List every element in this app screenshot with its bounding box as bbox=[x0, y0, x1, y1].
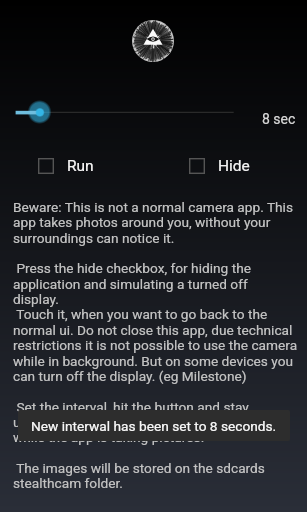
other: Stealth cam logo bbox=[132, 20, 174, 62]
staticText: Set the interval, hit the button and sta… bbox=[13, 399, 249, 415]
staticText: can turn off the display. (eg Milestone) bbox=[13, 368, 247, 384]
staticText: surroundings can notice it. bbox=[13, 230, 175, 246]
button[interactable]: Interval slider bbox=[0, 94, 245, 130]
staticText: while the app is taking pictures. bbox=[13, 429, 205, 445]
staticText: normal ui. Do not close this app, due te… bbox=[13, 322, 293, 338]
staticText: application and simulating a turned off bbox=[13, 276, 248, 292]
staticText: stealthcam folder. bbox=[13, 475, 123, 491]
staticText: display. bbox=[13, 291, 59, 307]
staticText: Hide bbox=[218, 157, 250, 175]
staticText: Run bbox=[67, 157, 94, 175]
staticText: while in background. But on some devices… bbox=[13, 353, 294, 369]
staticText: The images will be stored on the sdcards bbox=[13, 460, 265, 476]
button[interactable]: Run bbox=[34, 153, 100, 179]
staticText: Press the hide checkbox, for hiding the bbox=[13, 260, 251, 276]
staticText: Beware: This is not a normal camera app.… bbox=[13, 199, 293, 215]
staticText: Touch it, when you want to go back to th… bbox=[13, 306, 268, 322]
staticText: 8 sec bbox=[262, 111, 296, 127]
staticText: app takes photos around you, without you… bbox=[13, 214, 271, 230]
staticText: New interwal has been set to 8 seconds. bbox=[31, 418, 277, 434]
staticText: restrictions it is not possible to use t… bbox=[13, 337, 298, 353]
button[interactable]: Hide bbox=[185, 153, 256, 179]
staticText: unobtrusive. You can turn off the displa… bbox=[13, 414, 260, 430]
